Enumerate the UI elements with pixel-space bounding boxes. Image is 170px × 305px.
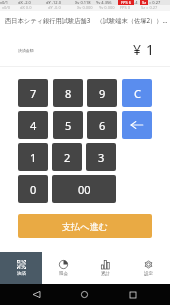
staticText: 決済金額	[18, 48, 34, 53]
staticText: ¥	[133, 40, 142, 59]
staticText: 9	[99, 86, 106, 101]
button[interactable]: 0	[18, 175, 48, 203]
button[interactable]: Recent apps	[123, 285, 142, 304]
staticText: dX -2.0	[18, 0, 31, 5]
staticText: Sz = 0.27	[141, 5, 158, 10]
button[interactable]: Home	[75, 285, 94, 304]
staticText: 7	[30, 86, 37, 101]
button[interactable]: 3	[86, 143, 116, 171]
staticText: -4	[134, 0, 138, 5]
button[interactable]: 1	[18, 143, 48, 171]
staticText: v0/1	[0, 0, 9, 5]
staticText: 西日本シティ銀行用試験店舗3 （試験端末（佐塚2））…	[5, 16, 168, 25]
staticText: = 0.27	[149, 0, 161, 5]
staticText: FPS 0	[120, 5, 131, 10]
staticText: Yv 0.000	[99, 5, 115, 10]
staticText: 支払へ進む	[62, 221, 108, 232]
staticText: 設定	[144, 271, 153, 277]
staticText: 1	[30, 150, 37, 165]
button[interactable]: C	[122, 79, 152, 107]
staticText: 1	[146, 40, 155, 59]
button[interactable]: 累計	[84, 252, 127, 284]
staticText: 照会	[59, 271, 68, 277]
staticText: 4	[30, 118, 37, 133]
button[interactable]: Back	[27, 285, 46, 304]
button[interactable]: 設定	[127, 252, 170, 284]
staticText: Xv 0.118	[75, 0, 91, 5]
staticText: 3	[98, 150, 105, 165]
staticText: dY -0.0	[48, 5, 61, 10]
staticText: C	[134, 86, 141, 101]
staticText: 5	[65, 118, 72, 133]
button[interactable]: 決済	[0, 252, 42, 284]
button[interactable]: 2	[52, 143, 82, 171]
button[interactable]: Backspace	[122, 111, 152, 139]
button[interactable]: 8	[53, 79, 83, 107]
staticText: FPS 6	[121, 0, 132, 5]
staticText: 2	[64, 150, 71, 165]
staticText: dY -12.0	[46, 0, 61, 5]
staticText: 00	[78, 182, 91, 197]
button[interactable]: 4	[18, 111, 48, 139]
staticText: Yv 4.356	[96, 0, 112, 5]
button[interactable]: 9	[87, 79, 117, 107]
staticText: 0	[30, 182, 37, 197]
button[interactable]: 5	[53, 111, 83, 139]
staticText: 累計	[101, 271, 110, 277]
button[interactable]: 00	[52, 175, 116, 203]
staticText: Xv 0.000	[77, 5, 93, 10]
staticText: v0/0	[2, 5, 11, 10]
staticText: Sz	[142, 0, 147, 5]
staticText: dX 0.0	[20, 5, 32, 10]
staticText: 8	[65, 86, 72, 101]
button[interactable]: 7	[18, 79, 48, 107]
button[interactable]: 照会	[42, 252, 84, 284]
button[interactable]: 6	[87, 111, 117, 139]
staticText: 6	[99, 118, 106, 133]
button[interactable]: 支払へ進む	[18, 214, 152, 238]
staticText: 決済	[17, 271, 26, 277]
